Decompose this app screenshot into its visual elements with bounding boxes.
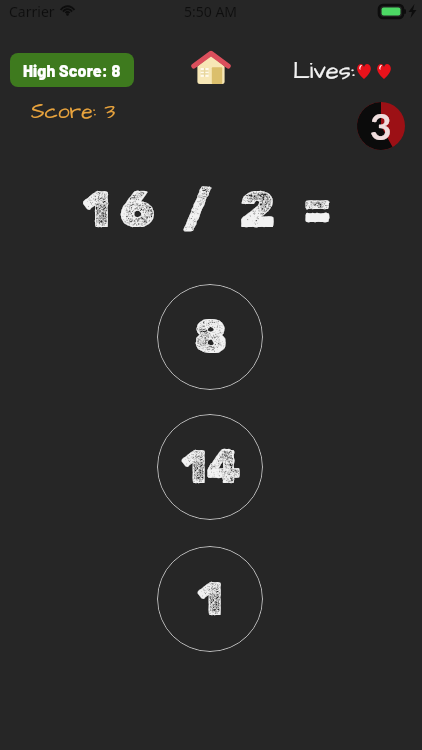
staticText: Score: 3 <box>31 97 116 126</box>
staticText: 5:50 AM <box>184 2 238 21</box>
button[interactable]: Home <box>188 50 234 84</box>
staticText: 8 <box>194 309 227 365</box>
button[interactable]: 1 <box>157 546 263 652</box>
staticText: 14 <box>181 439 240 495</box>
button[interactable]: High Score: 8 <box>10 53 134 87</box>
staticText: High Score: 8 <box>23 61 121 80</box>
staticText: 3 <box>370 103 392 147</box>
staticText: Lives: <box>293 54 355 87</box>
staticText: Carrier <box>9 2 55 21</box>
staticText: 16 / 2 = <box>82 179 341 239</box>
staticText: 1 <box>197 571 223 627</box>
button[interactable]: 14 <box>157 414 263 520</box>
button[interactable]: 8 <box>157 284 263 390</box>
